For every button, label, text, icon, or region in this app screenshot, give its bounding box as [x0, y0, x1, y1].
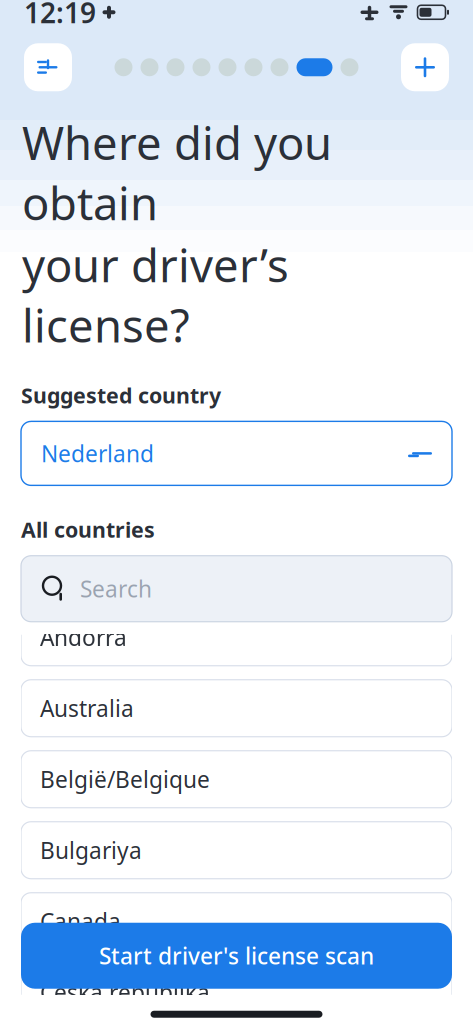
staticText: Where did you obtain	[22, 112, 332, 233]
button[interactable]: Bulgariya	[21, 822, 452, 879]
button[interactable]: Start driver's license scan	[21, 923, 452, 989]
button[interactable]: Close	[401, 43, 449, 91]
staticText: Bulgariya	[40, 835, 142, 865]
button[interactable]: Andorra	[21, 609, 452, 666]
staticText: Australia	[40, 693, 134, 723]
button[interactable]: Canada	[21, 893, 452, 950]
staticText: Nederland	[41, 438, 154, 468]
staticText: Suggested country	[21, 381, 221, 409]
button[interactable]: Australia	[21, 680, 452, 737]
button[interactable]: Search countries	[21, 556, 452, 622]
button[interactable]: Česká republika	[21, 964, 452, 1021]
staticText: Andorra	[40, 622, 127, 652]
staticText: All countries	[21, 515, 155, 544]
button[interactable]: Back	[24, 43, 72, 91]
staticText: 12:19	[24, 0, 96, 31]
staticText: Česká republika	[40, 977, 210, 1007]
staticText: Canada	[40, 906, 121, 936]
staticText: your driver’s license?	[22, 235, 289, 355]
button[interactable]: Nederland	[21, 421, 452, 485]
staticText: België/Belgique	[40, 764, 210, 794]
button[interactable]: België/Belgique	[21, 751, 452, 808]
staticText: Start driver's license scan	[99, 941, 374, 971]
staticText: Search	[80, 574, 152, 604]
